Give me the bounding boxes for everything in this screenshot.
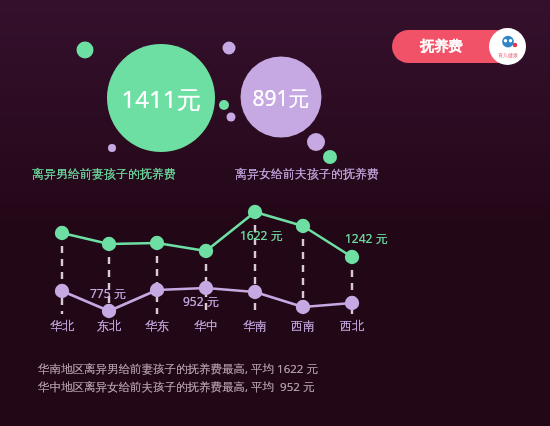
staticText: 离异女给前夫孩子的抚养费 (235, 166, 379, 181)
staticText: 育儿健康 (498, 52, 518, 58)
staticText: 1622 元 (240, 227, 283, 243)
staticText: 西南 (285, 318, 321, 333)
staticText: 775 元 (90, 285, 126, 301)
staticText: 华东 (139, 318, 175, 333)
staticText: 西北 (334, 318, 370, 333)
staticText: 1242 元 (345, 230, 388, 246)
button[interactable]: Logo (489, 28, 526, 65)
staticText: 东北 (91, 318, 127, 333)
staticText: 华中地区离异女给前夫孩子的抚养费最高, 平均 952 元 (38, 379, 315, 395)
staticText: 952 元 (183, 293, 219, 309)
staticText: 抚养费 (420, 38, 462, 56)
staticText: 华北 (44, 318, 80, 333)
staticText: 1411元 (118, 82, 204, 115)
staticText: 华南 (237, 318, 273, 333)
staticText: 离异男给前妻孩子的抚养费 (32, 166, 176, 181)
staticText: 华中 (188, 318, 224, 333)
staticText: 891元 (248, 84, 314, 113)
button[interactable]: 抚养费 (392, 30, 525, 63)
staticText: 华南地区离异男给前妻孩子的抚养费最高, 平均 1622 元 (38, 361, 318, 377)
